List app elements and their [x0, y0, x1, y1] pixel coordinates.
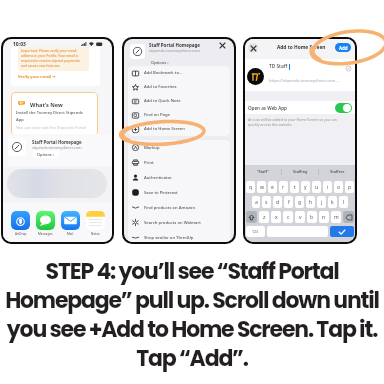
button[interactable]: Options › [32, 151, 59, 158]
staticText: Open as Web App [248, 105, 287, 111]
staticText: s [265, 199, 268, 206]
button[interactable]: Open as Web App [245, 101, 355, 114]
button[interactable]: s [262, 196, 271, 208]
staticText: AirDrop [15, 232, 27, 236]
button[interactable]: k [328, 196, 337, 208]
staticText: An icon will be added to your Home Scree… [248, 117, 348, 127]
staticText: w [260, 184, 264, 191]
button[interactable]: Staffing [282, 165, 318, 178]
button[interactable]: Save to Pinterest [128, 185, 230, 200]
button[interactable]: Shop similar on ThredUp [128, 230, 230, 242]
staticText: Messages [38, 232, 53, 236]
staticText: p [348, 184, 352, 191]
staticText: v [299, 214, 302, 221]
staticText: STEP 4: you’ll see “Staff Portal Homepag… [5, 256, 379, 374]
staticText: Markup [144, 145, 160, 151]
button[interactable]: Find on Page [128, 108, 230, 122]
staticText: Shop similar on ThredUp [144, 235, 194, 241]
button[interactable]: AirDrop [11, 211, 30, 236]
button[interactable]: h [306, 196, 315, 208]
staticText: 10:03 [13, 41, 26, 48]
button[interactable]: Add to Quick Note [128, 94, 230, 108]
staticText: Install the Toomey Direct Stipends App [16, 110, 84, 122]
staticText: Verify your email → [18, 74, 56, 79]
button[interactable]: Close [248, 43, 258, 53]
button[interactable]: Add [335, 43, 351, 52]
button[interactable]: g [295, 196, 304, 208]
button[interactable]: e [268, 181, 277, 193]
staticText: Add to Home Screen [277, 44, 326, 51]
staticText: What’s New [30, 101, 63, 109]
button[interactable]: y [301, 181, 310, 193]
staticText: Find on Page [144, 112, 170, 118]
button[interactable]: u [312, 181, 321, 193]
button[interactable]: i [323, 181, 332, 193]
button[interactable]: d [273, 196, 282, 208]
button[interactable]: Shift [246, 211, 257, 223]
button[interactable]: r [279, 181, 288, 193]
button[interactable]: f [284, 196, 293, 208]
staticText: Find products on Amazon [144, 205, 196, 211]
staticText: Mail [67, 232, 74, 236]
staticText: g [298, 199, 302, 206]
staticText: m [334, 214, 339, 221]
staticText: c [287, 214, 290, 221]
button[interactable]: Go [330, 226, 354, 237]
button[interactable]: Add Bookmark to... [128, 66, 230, 80]
button[interactable]: Find products on Amazon [128, 200, 230, 215]
button[interactable]: Staffers [319, 165, 355, 178]
button[interactable]: Mail [61, 211, 80, 236]
button[interactable]: c [283, 211, 293, 223]
staticText: i [327, 184, 329, 191]
staticText: Options › [37, 152, 54, 157]
staticText: Staff Portal Homepage [32, 139, 82, 145]
button[interactable]: Backspace [343, 211, 354, 223]
button[interactable]: x [271, 211, 281, 223]
button[interactable]: Markup [128, 140, 230, 155]
button[interactable]: t [290, 181, 299, 193]
staticText: q [249, 184, 253, 191]
staticText: r [282, 184, 285, 191]
staticText: stipends.toomeydirect.com [149, 48, 201, 53]
button[interactable]: v [295, 211, 305, 223]
staticText: Authenticator [144, 175, 172, 181]
button[interactable]: w [257, 181, 266, 193]
staticText: l [343, 199, 345, 206]
staticText: Options › [151, 60, 169, 65]
button[interactable]: Search products on Walmart [128, 215, 230, 230]
button[interactable]: q [246, 181, 255, 193]
button[interactable]: Add to Favorites [128, 80, 230, 94]
button[interactable]: Notes [86, 211, 105, 236]
button[interactable]: a [252, 196, 260, 208]
button[interactable]: Options › [151, 60, 169, 65]
staticText: Add [339, 45, 348, 51]
staticText: a [255, 199, 258, 206]
button[interactable]: Print [128, 155, 230, 170]
button[interactable]: j [317, 196, 326, 208]
button[interactable]: “Staff” [245, 165, 281, 178]
staticText: y [304, 184, 307, 191]
staticText: Staffers [330, 169, 345, 174]
staticText: j [321, 199, 323, 206]
button[interactable]: l [339, 196, 348, 208]
staticText: https://stipends.toomeydirect.com… [269, 78, 339, 84]
staticText: TD Staff [269, 63, 288, 70]
staticText: Important: Please verify your email addr… [21, 48, 86, 68]
button[interactable]: p [345, 181, 354, 193]
button[interactable]: b [307, 211, 317, 223]
button[interactable]: Messages [36, 211, 55, 236]
button[interactable]: 123 [246, 226, 265, 237]
button[interactable]: o [334, 181, 343, 193]
button[interactable]: Close [218, 41, 227, 50]
button[interactable]: Authenticator [128, 170, 230, 185]
button[interactable]: z [259, 211, 269, 223]
staticText: o [337, 184, 341, 191]
button[interactable]: n [319, 211, 329, 223]
staticText: b [310, 214, 314, 221]
button[interactable]: m [331, 211, 341, 223]
button[interactable]: Add to Home Screen [128, 122, 230, 136]
staticText: f [288, 199, 290, 206]
staticText: z [263, 214, 266, 221]
staticText: h [309, 199, 313, 206]
